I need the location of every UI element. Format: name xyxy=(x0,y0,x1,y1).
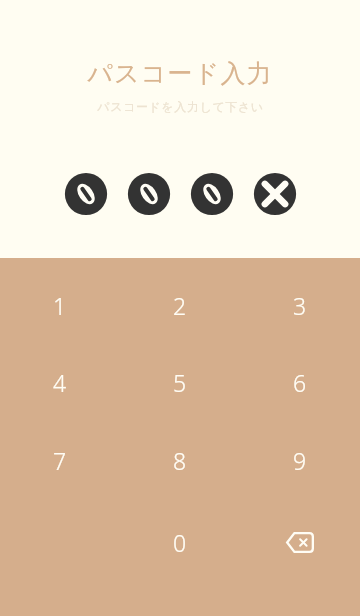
staticText: 0 xyxy=(173,527,187,558)
button[interactable]: Backspace xyxy=(240,510,360,574)
staticText: パスコード入力 xyxy=(87,58,273,89)
staticText: 6 xyxy=(293,367,307,398)
button[interactable]: 5 xyxy=(120,350,240,414)
staticText: 5 xyxy=(173,367,187,398)
staticText: パスコードを入力して下さい xyxy=(97,99,264,114)
button[interactable]: 6 xyxy=(240,350,360,414)
button[interactable]: 2 xyxy=(120,273,240,337)
button[interactable]: 9 xyxy=(240,428,360,492)
staticText: 3 xyxy=(293,290,307,321)
button[interactable]: 3 xyxy=(240,273,360,337)
button[interactable]: 0 xyxy=(120,510,240,574)
other: Entered digit xyxy=(127,172,171,216)
other: Entered digit xyxy=(190,172,234,216)
staticText: 2 xyxy=(173,290,187,321)
staticText: 8 xyxy=(173,445,187,476)
other: Clear xyxy=(253,172,297,216)
button[interactable]: 1 xyxy=(0,273,120,337)
other: Entered digit xyxy=(64,172,108,216)
staticText: 9 xyxy=(293,445,307,476)
button[interactable]: 8 xyxy=(120,428,240,492)
button[interactable]: 4 xyxy=(0,350,120,414)
staticText: 7 xyxy=(53,445,67,476)
staticText: 1 xyxy=(53,290,67,321)
staticText: 4 xyxy=(53,367,67,398)
button[interactable]: 7 xyxy=(0,428,120,492)
